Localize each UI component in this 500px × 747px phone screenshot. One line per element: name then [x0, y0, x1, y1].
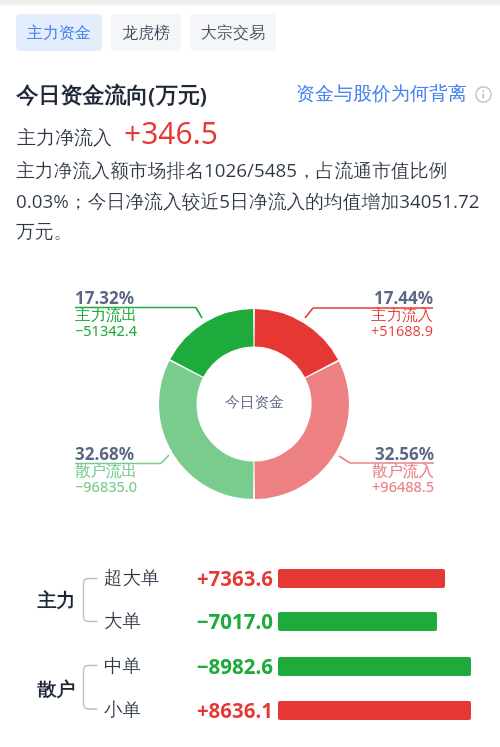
staticText: 17.44%: [373, 286, 433, 306]
staticText: 17.32%: [75, 286, 135, 306]
staticText: 超大单: [104, 566, 160, 589]
staticText: 主力净流入: [17, 126, 112, 150]
button[interactable]: 大单: [100, 603, 480, 640]
button[interactable]: 17.44%: [293, 286, 433, 341]
button[interactable]: 小单: [100, 692, 480, 729]
staticText: 今日资金流向(万元): [16, 79, 207, 109]
button[interactable]: 超大单: [100, 560, 480, 597]
button[interactable]: 龙虎榜: [111, 14, 181, 51]
staticText: 主力: [37, 589, 75, 613]
staticText: −7017.0: [196, 607, 273, 635]
staticText: 大宗交易: [201, 23, 265, 43]
button[interactable]: 主力资金: [16, 14, 102, 51]
staticText: 中单: [104, 654, 141, 677]
button[interactable]: 32.68%: [75, 442, 215, 497]
staticText: −51342.4: [75, 320, 137, 340]
staticText: +346.5: [124, 112, 218, 153]
staticText: 大单: [104, 609, 141, 632]
staticText: −96835.0: [75, 476, 137, 496]
button[interactable]: 资金与股价为何背离: [296, 82, 492, 106]
button[interactable]: 32.56%: [294, 442, 434, 497]
staticText: 龙虎榜: [122, 23, 170, 43]
staticText: 主力流出: [75, 305, 137, 325]
button[interactable]: 大宗交易: [190, 14, 276, 51]
staticText: 今日资金: [225, 393, 284, 411]
staticText: +7363.6: [196, 564, 273, 592]
staticText: 小单: [104, 698, 141, 721]
button[interactable]: 17.32%: [75, 286, 215, 341]
staticText: +8636.1: [196, 696, 273, 724]
staticText: 32.56%: [374, 442, 434, 462]
staticText: 32.68%: [75, 442, 135, 462]
staticText: 主力净流入额市场排名1026/5485，占流通市值比例0.03%；今日净流入较近…: [16, 157, 486, 244]
staticText: 主力流入: [371, 305, 433, 325]
staticText: 散户: [37, 678, 75, 702]
button[interactable]: 中单: [100, 648, 480, 685]
staticText: 散户流出: [75, 461, 137, 481]
staticText: 主力资金: [27, 23, 91, 43]
staticText: +96488.5: [372, 476, 434, 496]
staticText: +51688.9: [371, 320, 433, 340]
staticText: −8982.6: [196, 652, 273, 680]
staticText: 散户流入: [372, 461, 434, 481]
other: 说明: [475, 86, 492, 103]
staticText: 资金与股价为何背离: [296, 82, 467, 106]
